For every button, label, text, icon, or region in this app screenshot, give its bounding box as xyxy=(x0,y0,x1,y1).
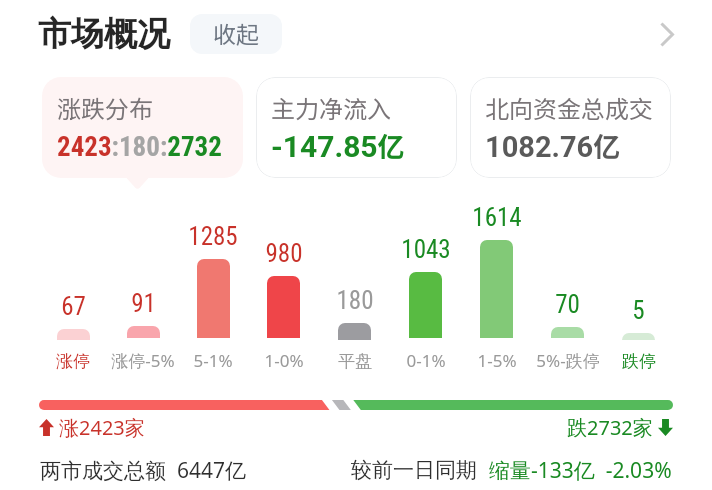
staticText: -147.85亿 xyxy=(271,126,405,165)
staticText: 1082.76亿 xyxy=(485,126,621,165)
staticText: 2423:180:2732 xyxy=(57,131,222,163)
staticText: 5%-跌停 xyxy=(536,349,600,372)
staticText: 缩量-133亿 -2.03% xyxy=(489,456,672,485)
staticText: 980 xyxy=(265,239,303,268)
staticText: 1043 xyxy=(401,235,451,264)
staticText: 涨停 xyxy=(56,351,90,372)
button[interactable]: Expand xyxy=(650,16,686,52)
button[interactable]: 涨跌分布 xyxy=(42,77,243,178)
staticText: 5 xyxy=(632,296,645,325)
staticText: 67 xyxy=(61,292,86,321)
staticText: 涨2423家 xyxy=(59,414,145,440)
staticText: 180 xyxy=(336,286,374,315)
staticText: 5-1% xyxy=(193,349,233,372)
staticText: 较前一日同期 xyxy=(351,457,477,483)
staticText: 70 xyxy=(555,290,580,319)
staticText: 1-5% xyxy=(477,349,517,372)
staticText: 跌2732家 xyxy=(567,414,653,440)
staticText: 91 xyxy=(131,289,156,318)
staticText: 平盘 xyxy=(338,351,372,372)
staticText: 北向资金总成交 xyxy=(485,90,653,125)
staticText: 跌停 xyxy=(622,351,656,372)
staticText: 收起 xyxy=(213,16,259,49)
staticText: 市场概况 xyxy=(38,13,170,55)
button[interactable]: 北向资金总成交 xyxy=(470,77,671,178)
staticText: 涨停-5% xyxy=(111,349,175,372)
staticText: 主力净流入 xyxy=(271,90,391,125)
staticText: 两市成交总额 6447亿 xyxy=(40,456,246,485)
staticText: 1285 xyxy=(188,222,238,251)
staticText: 0-1% xyxy=(406,349,446,372)
staticText: 涨跌分布 xyxy=(57,90,153,125)
staticText: 1-0% xyxy=(264,349,304,372)
button[interactable]: 收起 xyxy=(190,14,282,54)
staticText: 1614 xyxy=(472,203,522,232)
button[interactable]: 主力净流入 xyxy=(256,77,457,178)
